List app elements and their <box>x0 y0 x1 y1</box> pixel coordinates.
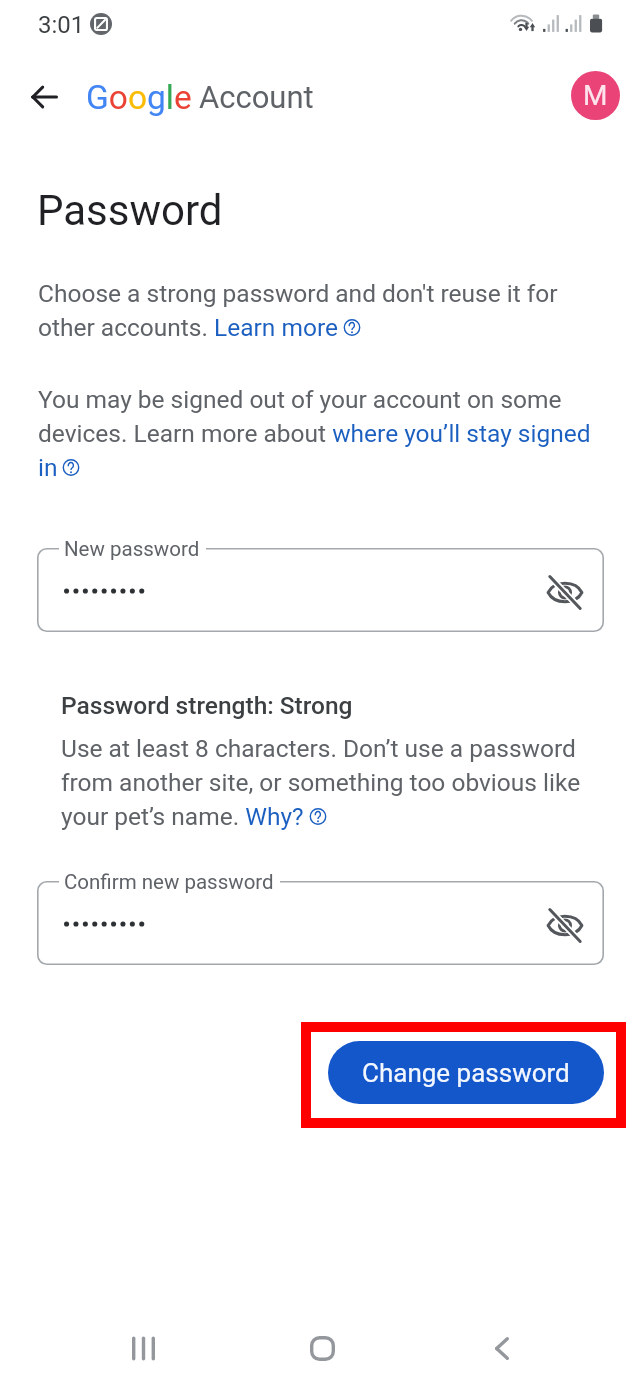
button[interactable]: Show password <box>540 901 589 950</box>
button[interactable]: Show password <box>540 568 589 617</box>
staticText: Change password <box>362 1058 570 1088</box>
button[interactable]: Navigate up <box>18 71 70 123</box>
staticText: Account <box>199 79 314 115</box>
staticText: 3:01 <box>38 11 85 39</box>
button[interactable]: Recent apps <box>110 1315 176 1381</box>
button[interactable]: You may be signed out of your account on… <box>38 385 591 482</box>
button[interactable]: Change password <box>328 1041 604 1104</box>
staticText: Password <box>37 186 223 235</box>
button[interactable]: Choose a strong password and don't reuse… <box>38 279 558 342</box>
button[interactable]: Google Account <box>571 71 620 120</box>
staticText: Password strength: Strong <box>61 691 353 720</box>
staticText: New password <box>64 537 200 561</box>
staticText: Google <box>86 78 192 117</box>
staticText: Confirm new password <box>64 870 274 894</box>
button[interactable]: Use at least 8 characters. Don’t use a p… <box>61 734 581 831</box>
button[interactable]: Back <box>469 1315 535 1381</box>
button[interactable]: Home <box>289 1315 355 1381</box>
staticText: M <box>583 79 608 112</box>
